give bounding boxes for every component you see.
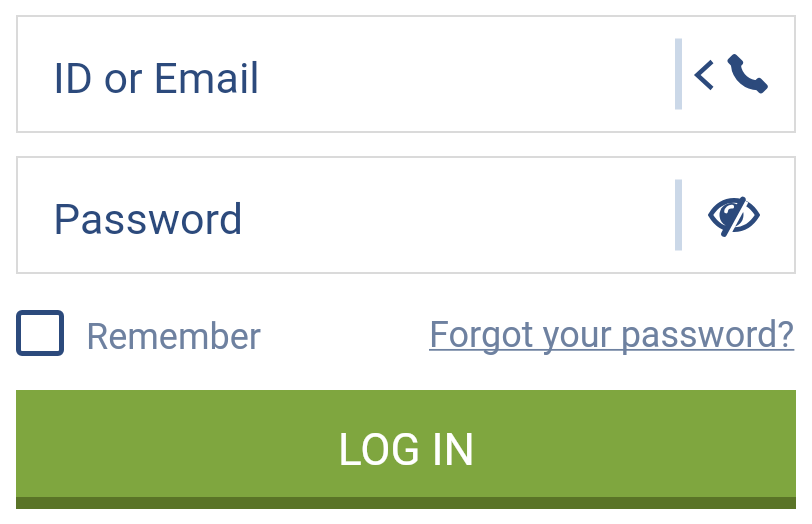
staticText: LOG IN bbox=[338, 424, 475, 476]
staticText: ID or Email bbox=[53, 53, 260, 103]
button[interactable]: LOG IN bbox=[16, 390, 796, 497]
button[interactable]: Call bbox=[674, 15, 796, 133]
button[interactable]: Show password bbox=[674, 156, 796, 274]
button[interactable]: ID or Email bbox=[16, 15, 796, 133]
staticText: Remember bbox=[86, 316, 262, 358]
button[interactable]: Forgot your password? bbox=[429, 314, 795, 356]
button[interactable]: Password bbox=[16, 156, 796, 274]
staticText: Password bbox=[53, 194, 243, 244]
button[interactable]: Remember bbox=[16, 310, 265, 356]
staticText: Forgot your password? bbox=[429, 314, 795, 356]
